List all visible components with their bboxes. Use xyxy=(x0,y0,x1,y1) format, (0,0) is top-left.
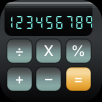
button[interactable]: % xyxy=(66,39,91,63)
staticText: + xyxy=(14,70,24,88)
button[interactable]: + xyxy=(7,67,32,91)
button[interactable]: ÷ xyxy=(7,39,32,63)
staticText: 123456789 xyxy=(4,14,94,30)
staticText: % xyxy=(71,42,86,60)
staticText: X xyxy=(43,42,53,60)
button[interactable]: – xyxy=(36,67,61,91)
button[interactable]: = xyxy=(66,67,91,91)
button[interactable]: X xyxy=(36,39,61,63)
staticText: – xyxy=(45,70,52,88)
staticText: ÷ xyxy=(14,42,24,60)
staticText: = xyxy=(73,70,83,88)
